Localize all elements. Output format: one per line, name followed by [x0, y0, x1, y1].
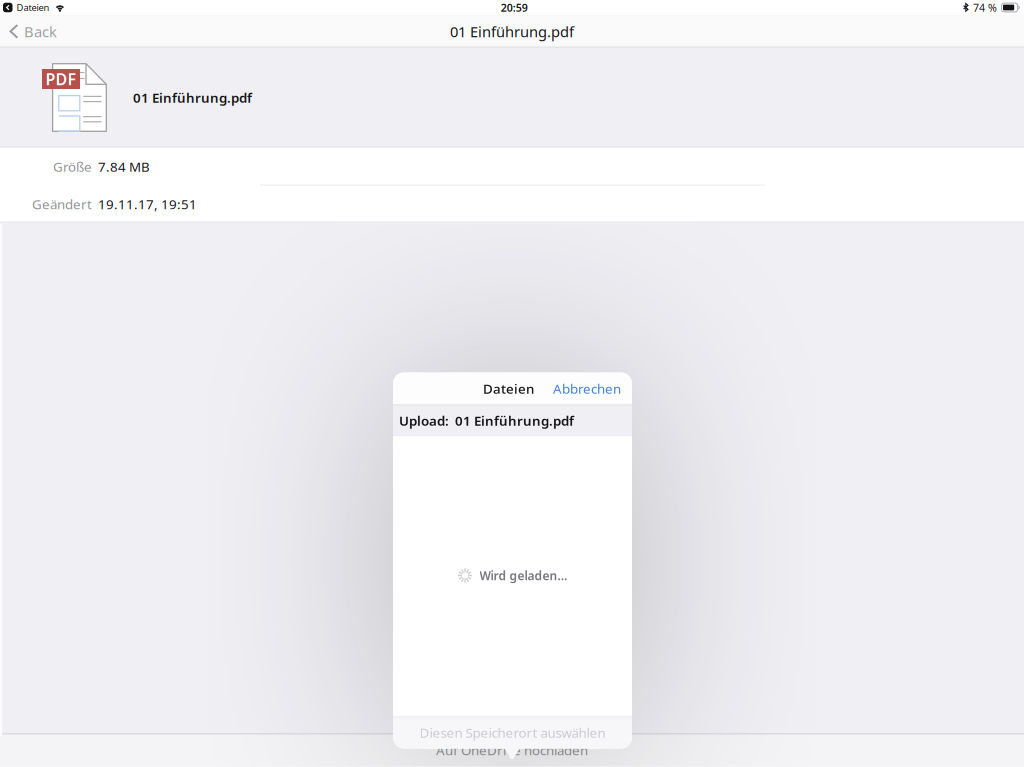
- staticText: Größe: [53, 158, 92, 175]
- button[interactable]: Abbrechen: [553, 375, 621, 402]
- staticText: Geändert: [32, 195, 92, 213]
- button[interactable]: Diesen Speicherort auswählen: [411, 719, 613, 746]
- staticText: 7.84 MB: [98, 158, 150, 175]
- staticText: Auf OneDrive hochladen: [436, 741, 588, 759]
- staticText: Upload:: [399, 412, 449, 429]
- staticText: Wird geladen…: [479, 567, 567, 583]
- staticText: 19.11.17, 19:51: [98, 195, 197, 213]
- staticText: PDF: [45, 68, 76, 90]
- staticText: Abbrechen: [553, 380, 621, 397]
- staticText: Dateien: [16, 1, 49, 14]
- staticText: 01 Einführung.pdf: [133, 89, 252, 106]
- staticText: Dateien: [483, 380, 534, 397]
- staticText: Diesen Speicherort auswählen: [419, 724, 605, 741]
- button[interactable]: Back: [0, 16, 57, 47]
- staticText: 01 Einführung.pdf: [450, 22, 574, 41]
- button[interactable]: Auf OneDrive hochladen: [428, 737, 596, 763]
- button[interactable]: Dateien: [483, 375, 534, 402]
- staticText: 74 %: [973, 0, 997, 15]
- staticText: 20:59: [501, 0, 528, 15]
- button[interactable]: Back to Dateien: [0, 1, 49, 14]
- staticText: Back: [24, 22, 57, 41]
- staticText: 01 Einführung.pdf: [455, 412, 574, 429]
